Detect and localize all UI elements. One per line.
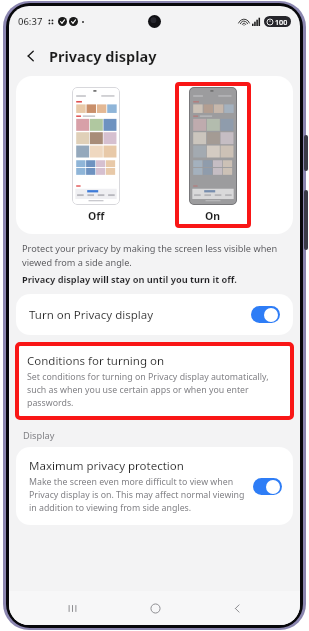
button[interactable]: Toggle bbox=[251, 306, 280, 323]
staticText: Off bbox=[88, 209, 105, 223]
staticText: Make the screen even more difficult to v… bbox=[29, 476, 245, 514]
staticText: Privacy display will stay on until you t… bbox=[22, 273, 237, 286]
button[interactable]: Maximum privacy protection bbox=[16, 447, 293, 525]
staticText: Maximum privacy protection bbox=[29, 458, 184, 474]
staticText: Protect your privacy by making the scree… bbox=[22, 242, 287, 269]
staticText: On bbox=[205, 209, 221, 223]
button[interactable]: Conditions for turning on bbox=[19, 346, 290, 416]
button[interactable]: Off bbox=[63, 87, 129, 223]
staticText: Turn on Privacy display bbox=[29, 307, 251, 323]
button[interactable]: Back bbox=[218, 591, 256, 625]
staticText: Display bbox=[23, 429, 55, 442]
button[interactable]: On bbox=[180, 87, 246, 223]
button[interactable]: Back bbox=[17, 42, 45, 70]
button[interactable]: Home bbox=[136, 591, 174, 625]
button[interactable]: Toggle bbox=[253, 478, 282, 495]
staticText: Privacy display bbox=[49, 46, 157, 66]
button[interactable]: Recent apps bbox=[53, 591, 91, 625]
staticText: Set conditions for turning on Privacy di… bbox=[27, 371, 282, 409]
staticText: 100 bbox=[275, 17, 288, 27]
staticText: 06:37 bbox=[18, 15, 43, 28]
staticText: Conditions for turning on bbox=[27, 353, 165, 369]
button[interactable]: Turn on Privacy display bbox=[16, 294, 293, 335]
